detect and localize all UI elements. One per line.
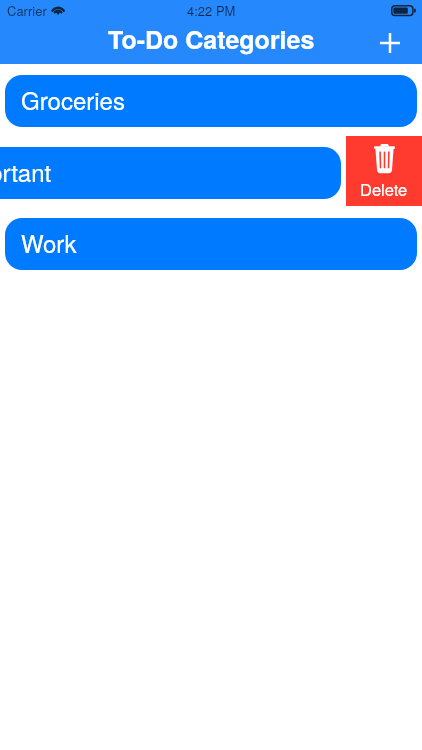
- button[interactable]: Add category: [373, 26, 407, 60]
- staticText: Carrier: [7, 1, 47, 20]
- button[interactable]: Important: [0, 147, 341, 199]
- staticText: To-Do Categories: [108, 21, 315, 57]
- staticText: Work: [21, 225, 77, 259]
- staticText: Important: [0, 154, 52, 188]
- staticText: Delete: [360, 177, 408, 201]
- staticText: 4:22 PM: [187, 1, 236, 20]
- button[interactable]: Groceries: [5, 75, 417, 127]
- button[interactable]: Delete Important: [346, 136, 422, 206]
- button[interactable]: Work: [5, 218, 417, 270]
- staticText: Groceries: [21, 82, 125, 116]
